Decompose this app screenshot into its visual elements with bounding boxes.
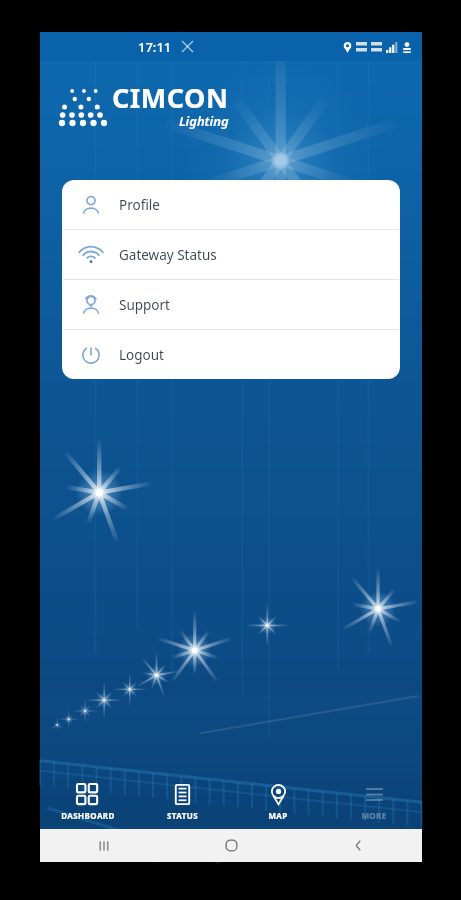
button[interactable]: Gateway Status	[62, 230, 400, 279]
staticText: DASHBOARD	[61, 810, 115, 821]
button[interactable]: Back	[295, 829, 422, 862]
staticText: Support	[119, 296, 170, 314]
button[interactable]: STATUS	[135, 775, 230, 829]
button[interactable]: Profile	[62, 180, 400, 229]
staticText: Profile	[119, 196, 160, 214]
button[interactable]: Logout	[62, 330, 400, 379]
staticText: STATUS	[167, 810, 198, 821]
button[interactable]: MAP	[230, 775, 326, 829]
staticText: MAP	[268, 810, 288, 821]
button[interactable]: MORE	[326, 775, 422, 829]
button[interactable]: Recents	[40, 829, 168, 862]
staticText: 17:11	[138, 38, 172, 56]
button[interactable]: Home	[168, 829, 295, 862]
button[interactable]: Support	[62, 280, 400, 329]
staticText: Lighting	[179, 112, 229, 130]
staticText: Logout	[119, 346, 164, 364]
button[interactable]: DASHBOARD	[40, 775, 135, 829]
staticText: MORE	[361, 810, 387, 821]
staticText: Gateway Status	[119, 246, 217, 264]
staticText: CIMCON	[112, 79, 229, 116]
